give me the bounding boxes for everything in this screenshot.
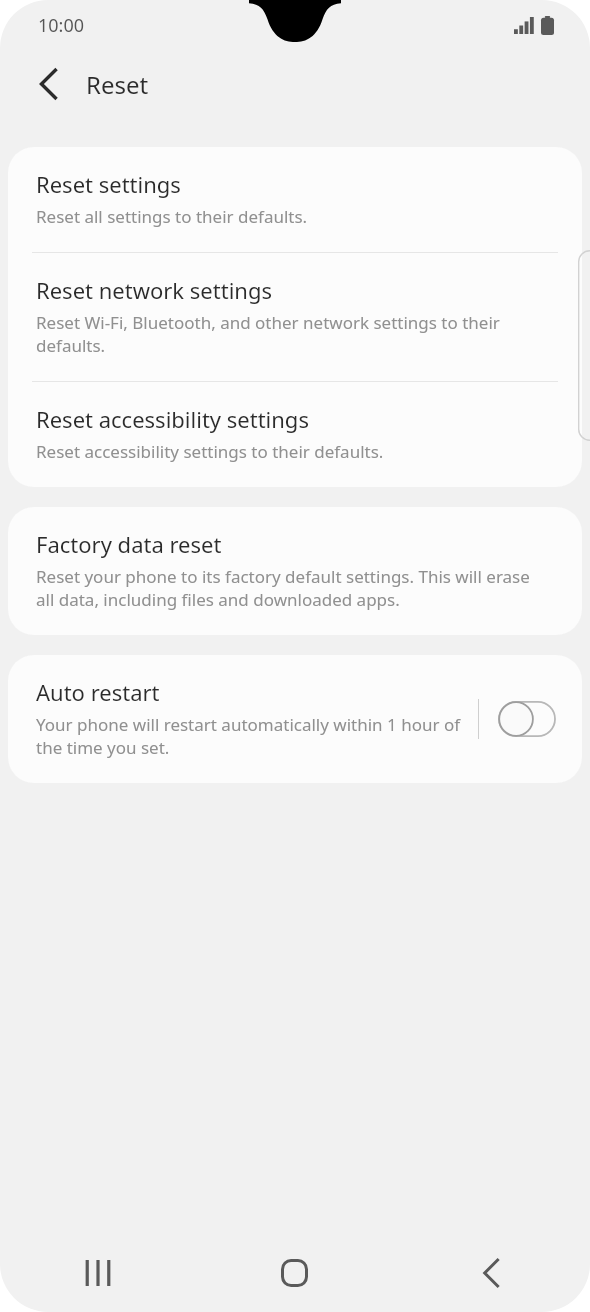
button[interactable]: Home (196, 1234, 393, 1312)
staticText: Reset settings (36, 169, 181, 199)
staticText: Reset Wi-Fi, Bluetooth, and other networ… (36, 311, 546, 357)
staticText: Reset network settings (36, 275, 272, 305)
staticText: Reset your phone to its factory default … (36, 565, 546, 611)
button[interactable]: Factory data reset (8, 507, 582, 635)
button[interactable]: Recent apps (0, 1234, 196, 1312)
staticText: Reset (86, 68, 149, 101)
button[interactable]: Auto restart toggle (498, 699, 556, 739)
staticText: Reset accessibility settings (36, 404, 309, 434)
button[interactable]: Reset network settings (8, 253, 582, 381)
staticText: Auto restart (36, 677, 160, 707)
staticText: Reset accessibility settings to their de… (36, 440, 384, 463)
button[interactable]: Back (24, 59, 74, 109)
staticText: Your phone will restart automatically wi… (36, 713, 470, 759)
staticText: Factory data reset (36, 529, 222, 559)
button[interactable]: Back (393, 1234, 590, 1312)
button[interactable]: Auto restart (8, 655, 582, 783)
staticText: 10:00 (38, 13, 85, 38)
button[interactable]: Reset accessibility settings (8, 382, 582, 487)
staticText: Reset all settings to their defaults. (36, 205, 308, 228)
button[interactable]: Reset settings (8, 147, 582, 252)
